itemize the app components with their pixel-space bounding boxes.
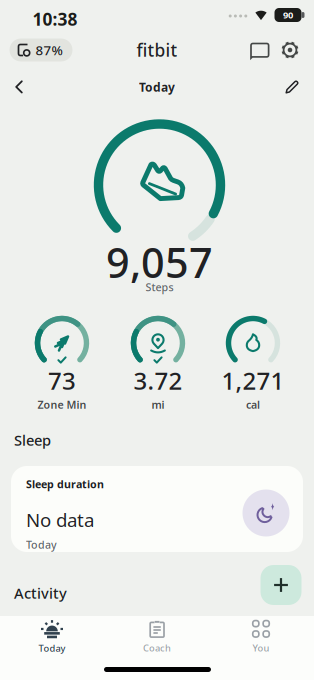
button[interactable]: Previous day [14,80,23,94]
button[interactable]: Distance [130,315,186,371]
button[interactable]: Steps progress [87,113,231,257]
staticText: cal [246,397,260,412]
staticText: You [252,642,269,654]
button[interactable]: Coach [107,616,207,658]
staticText: Zone Min [37,397,86,412]
staticText: 1,271 [221,365,284,396]
staticText: Activity [14,583,67,603]
button[interactable]: Sleep duration, no data [11,466,303,552]
staticText: fitbit [136,38,177,61]
staticText: 87% [35,41,62,59]
staticText: 3.72 [133,365,182,396]
staticText: No data [26,507,94,532]
button[interactable]: Calories [225,315,281,371]
staticText: Today [26,537,57,552]
button[interactable]: You [211,616,311,658]
staticText: Coach [143,642,171,654]
staticText: 9,057 [106,235,213,289]
button[interactable]: Zone minutes [34,315,90,371]
staticText: 73 [48,365,76,396]
button[interactable]: Device battery 87% [9,38,72,61]
staticText: Today [38,642,65,654]
staticText: 90 [283,9,293,21]
staticText: Sleep duration [26,477,104,491]
button[interactable]: Add activity [260,565,301,605]
staticText: Sleep [14,430,51,450]
staticText: Today [139,79,175,95]
button[interactable]: Settings [280,40,300,60]
button[interactable]: Messages [250,42,270,59]
button[interactable]: Edit [285,80,299,94]
staticText: Steps [145,280,173,294]
button[interactable]: Today [2,616,102,658]
staticText: mi [151,397,164,412]
staticText: 10:38 [32,7,77,30]
